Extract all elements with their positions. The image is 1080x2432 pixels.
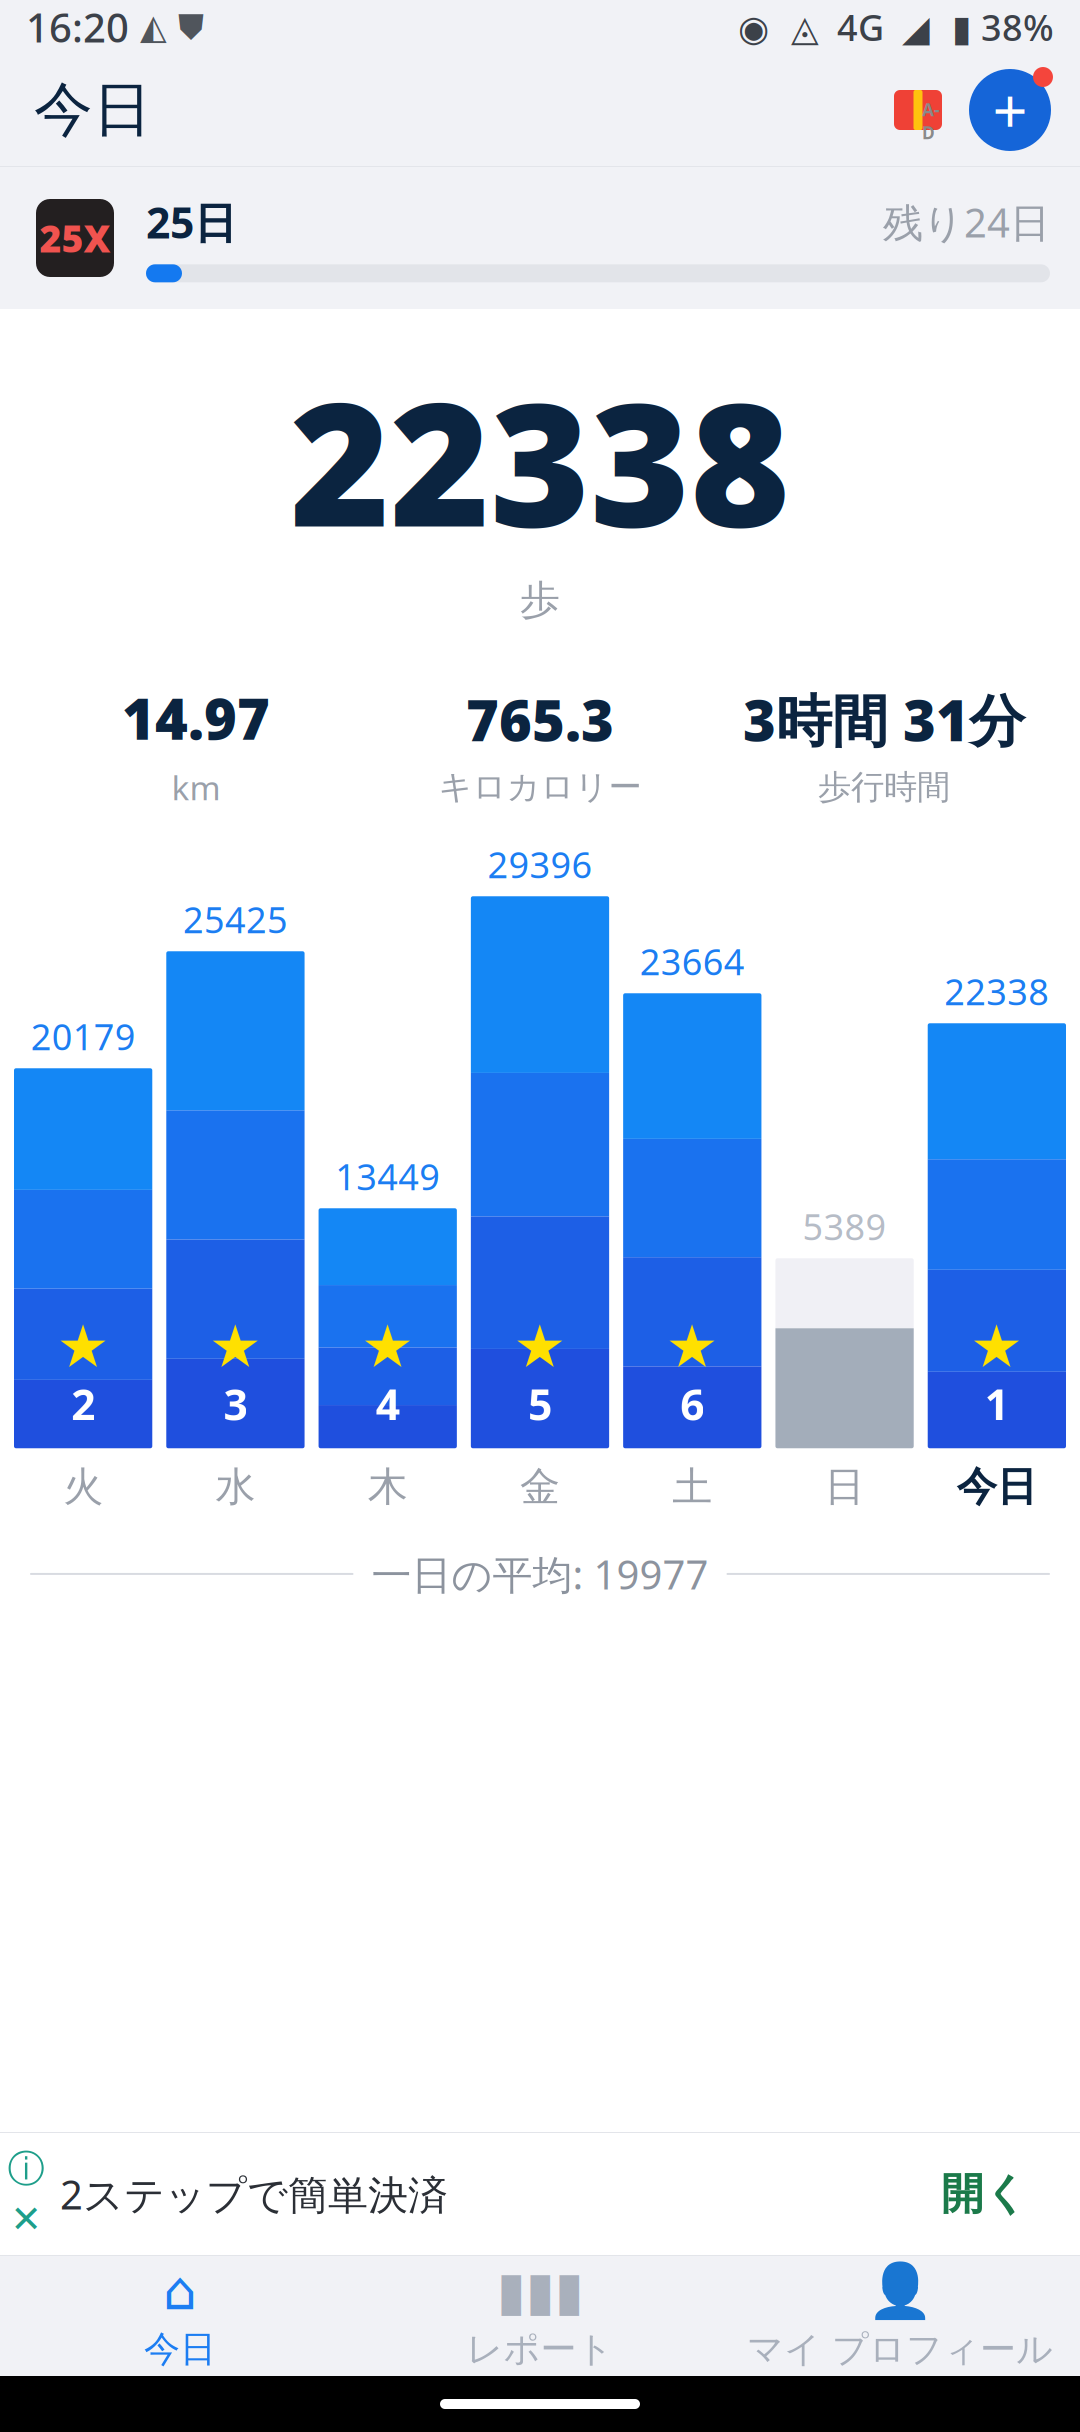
staticText: 3 bbox=[223, 1376, 247, 1432]
staticText: ★ bbox=[361, 1313, 414, 1380]
staticText: 今日 bbox=[957, 1462, 1037, 1511]
staticText: AD bbox=[922, 98, 940, 144]
staticText: 5389 bbox=[803, 1202, 887, 1250]
staticText: 25X bbox=[39, 213, 110, 263]
staticText: 13449 bbox=[335, 1152, 440, 1200]
staticText: 20179 bbox=[31, 1012, 136, 1060]
staticText: 5 bbox=[528, 1376, 552, 1432]
staticText: 歩行時間 bbox=[818, 767, 950, 808]
staticText: 1 bbox=[985, 1376, 1009, 1432]
button[interactable]: ⌂ bbox=[0, 2251, 360, 2381]
staticText: 22338 bbox=[944, 967, 1049, 1015]
staticText: 2 bbox=[71, 1376, 95, 1432]
staticText: 16:20 bbox=[26, 0, 129, 53]
button[interactable]: ▮▮▮ bbox=[360, 2251, 720, 2381]
button[interactable]: 開く bbox=[929, 2160, 1040, 2228]
staticText: ⓘ bbox=[7, 2146, 44, 2192]
staticText: マイ プロフィール bbox=[747, 2327, 1053, 2372]
button[interactable]: Add bbox=[962, 62, 1058, 158]
staticText: 765.3 bbox=[466, 682, 614, 757]
staticText: 29396 bbox=[487, 840, 592, 888]
staticText: 3時間 31分 bbox=[743, 682, 1025, 757]
staticText: 23664 bbox=[640, 937, 745, 985]
staticText: 14.97 bbox=[122, 681, 270, 755]
button[interactable]: Close ad bbox=[6, 2199, 46, 2239]
staticText: 4 bbox=[376, 1376, 400, 1432]
staticText: 25425 bbox=[183, 895, 288, 943]
staticText: 金 bbox=[520, 1462, 560, 1511]
staticText: 今日 bbox=[144, 2327, 216, 2371]
staticText: 一日の平均: 19977 bbox=[371, 1547, 708, 1600]
staticText: 25日 bbox=[146, 194, 237, 250]
button[interactable]: 25X bbox=[0, 167, 1080, 309]
staticText: ★ bbox=[970, 1313, 1023, 1380]
button[interactable]: Rewards bbox=[882, 74, 954, 146]
staticText: 今日 bbox=[34, 74, 152, 146]
staticText: 火 bbox=[63, 1462, 103, 1511]
staticText: レポート bbox=[466, 2327, 613, 2371]
staticText: ★ bbox=[57, 1313, 110, 1380]
button[interactable]: 👤 bbox=[720, 2250, 1080, 2382]
staticText: キロカロリー bbox=[438, 767, 641, 808]
staticText: km bbox=[171, 765, 220, 809]
staticText: ◭ ⛊ bbox=[129, 7, 204, 47]
staticText: ▮▮▮ bbox=[496, 2261, 583, 2321]
staticText: 土 bbox=[672, 1462, 712, 1511]
staticText: ◉ ◬ 4G ◢ ▮ 38% bbox=[738, 3, 1054, 51]
staticText: + bbox=[992, 69, 1027, 151]
staticText: ★ bbox=[209, 1313, 262, 1380]
staticText: ★ bbox=[666, 1313, 719, 1380]
staticText: ★ bbox=[513, 1313, 566, 1380]
staticText: 残り24日 bbox=[883, 195, 1050, 248]
staticText: 木 bbox=[368, 1462, 408, 1511]
staticText: ✕ bbox=[10, 2198, 41, 2240]
staticText: 22338 bbox=[290, 347, 790, 574]
staticText: 6 bbox=[680, 1376, 704, 1432]
staticText: 開く bbox=[941, 2168, 1028, 2220]
staticText: 👤 bbox=[867, 2260, 933, 2321]
staticText: 歩 bbox=[520, 576, 560, 625]
staticText: ⌂ bbox=[163, 2261, 197, 2321]
staticText: 日 bbox=[825, 1462, 865, 1511]
staticText: 2ステップで簡単決済 bbox=[60, 2167, 448, 2220]
button[interactable]: Ad info bbox=[6, 2149, 46, 2189]
staticText: 水 bbox=[215, 1462, 255, 1511]
